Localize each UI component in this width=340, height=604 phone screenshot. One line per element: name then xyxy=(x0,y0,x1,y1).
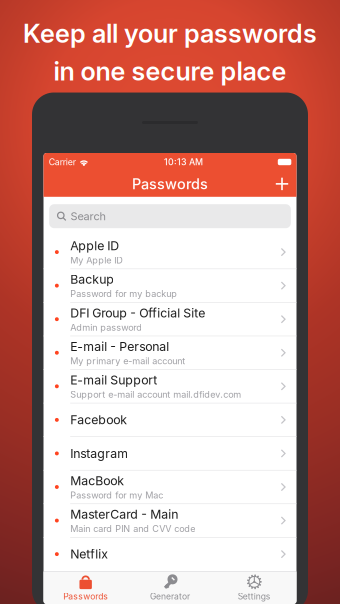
staticText: Password for my Mac xyxy=(70,490,163,501)
button[interactable]: Netflix xyxy=(43,538,296,571)
staticText: MasterCard - Main xyxy=(70,507,178,522)
staticText: Passwords xyxy=(132,175,208,193)
button[interactable]: Instagram xyxy=(43,437,296,470)
staticText: My primary e-mail account xyxy=(70,355,185,366)
staticText: Instagram xyxy=(70,446,128,461)
staticText: DFI Group - Official Site xyxy=(70,305,205,320)
button[interactable]: DFI Group - Official Site xyxy=(43,303,296,336)
staticText: E-mail - Personal xyxy=(70,339,169,354)
button[interactable]: MacBook xyxy=(43,470,296,503)
staticText: Generator xyxy=(150,591,190,602)
button[interactable]: Apple ID xyxy=(43,236,296,269)
staticText: Main card PIN and CVV code xyxy=(70,523,195,534)
button[interactable]: Backup xyxy=(43,269,296,302)
staticText: Search xyxy=(70,210,105,223)
staticText: My Apple ID xyxy=(70,255,123,266)
staticText: Settings xyxy=(238,591,271,602)
staticText: Admin password xyxy=(70,322,142,333)
staticText: in one secure place xyxy=(53,56,286,87)
button[interactable]: E-mail Support xyxy=(43,370,296,403)
staticText: E-mail Support xyxy=(70,373,157,387)
staticText: Passwords xyxy=(63,591,108,602)
staticText: Netflix xyxy=(70,547,108,561)
button[interactable]: Facebook xyxy=(43,403,296,436)
staticText: Facebook xyxy=(70,412,127,427)
staticText: MacBook xyxy=(70,473,124,488)
button[interactable]: Passwords xyxy=(43,572,128,604)
button[interactable]: Add password xyxy=(267,171,296,197)
staticText: Apple ID xyxy=(70,238,119,253)
staticText: Backup xyxy=(70,272,114,287)
button[interactable]: MasterCard - Main xyxy=(43,504,296,537)
button[interactable]: Settings xyxy=(212,572,296,604)
button[interactable]: Search xyxy=(49,204,291,228)
staticText: Support e-mail account mail.dfidev.com xyxy=(70,389,241,400)
staticText: Keep all your passwords xyxy=(23,18,317,49)
button[interactable]: E-mail - Personal xyxy=(43,336,296,369)
staticText: 10:13 AM xyxy=(164,157,203,167)
staticText: Password for my backup xyxy=(70,288,177,299)
staticText: Carrier xyxy=(49,157,76,167)
button[interactable]: Generator xyxy=(128,572,212,604)
